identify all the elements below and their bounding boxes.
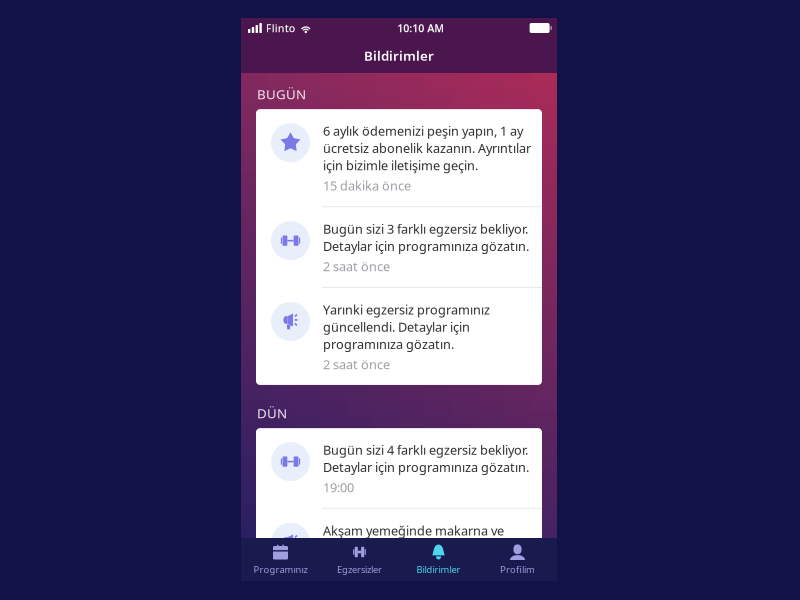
staticText: Programınız xyxy=(253,563,307,576)
button[interactable]: Bugün sizi 3 farklı egzersiz bekliyor. xyxy=(256,207,542,287)
staticText: 2 saat önce xyxy=(323,258,390,275)
staticText: Bildirimler xyxy=(364,46,434,65)
staticText: Bugün sizi 3 farklı egzersiz bekliyor. xyxy=(323,220,528,237)
staticText: DÜN xyxy=(257,404,287,422)
button[interactable]: 6 aylık ödemenizi peşin yapın, 1 ay xyxy=(256,109,542,206)
staticText: programınıza gözatın. xyxy=(323,335,454,353)
staticText: Profilim xyxy=(500,563,535,576)
staticText: için bizimle iletişime geçin. xyxy=(323,157,478,174)
staticText: 10:10 AM xyxy=(397,21,444,35)
staticText: Egzersizler xyxy=(337,563,382,576)
staticText: Detaylar için programınıza gözatın. xyxy=(323,237,529,255)
staticText: Detaylar için programınıza gözatın. xyxy=(323,458,529,476)
staticText: 15 dakika önce xyxy=(323,177,411,194)
button[interactable]: Akşam yemeğinde makarna ve xyxy=(256,509,542,589)
staticText: 19:00 xyxy=(323,479,354,496)
button[interactable]: Bugün sizi 4 farklı egzersiz bekliyor. xyxy=(256,428,542,508)
staticText: BUGÜN xyxy=(257,85,306,103)
button[interactable]: Bildirimler xyxy=(399,538,478,581)
staticText: Bildirimler xyxy=(416,563,460,576)
staticText: 6 aylık ödemenizi peşin yapın, 1 ay xyxy=(323,122,523,139)
button[interactable]: Programınız xyxy=(241,538,320,581)
staticText: Bugün sizi 4 farklı egzersiz bekliyor. xyxy=(323,441,528,458)
button[interactable]: Yarınki egzersiz programınız xyxy=(256,288,542,385)
staticText: 18:00 xyxy=(323,559,354,577)
staticText: Yarınki egzersiz programınız xyxy=(323,301,490,318)
button[interactable]: Egzersizler xyxy=(320,538,399,581)
staticText: 2 saat önce xyxy=(323,356,390,373)
staticText: pilav yemeyin. xyxy=(323,539,405,556)
staticText: güncellendi. Detaylar için xyxy=(323,318,470,335)
staticText: Flinto xyxy=(266,21,296,35)
staticText: Akşam yemeğinde makarna ve xyxy=(323,522,504,539)
staticText: ücretsiz abonelik kazanın. Ayrıntılar xyxy=(323,139,531,157)
button[interactable]: Profilim xyxy=(478,538,557,581)
